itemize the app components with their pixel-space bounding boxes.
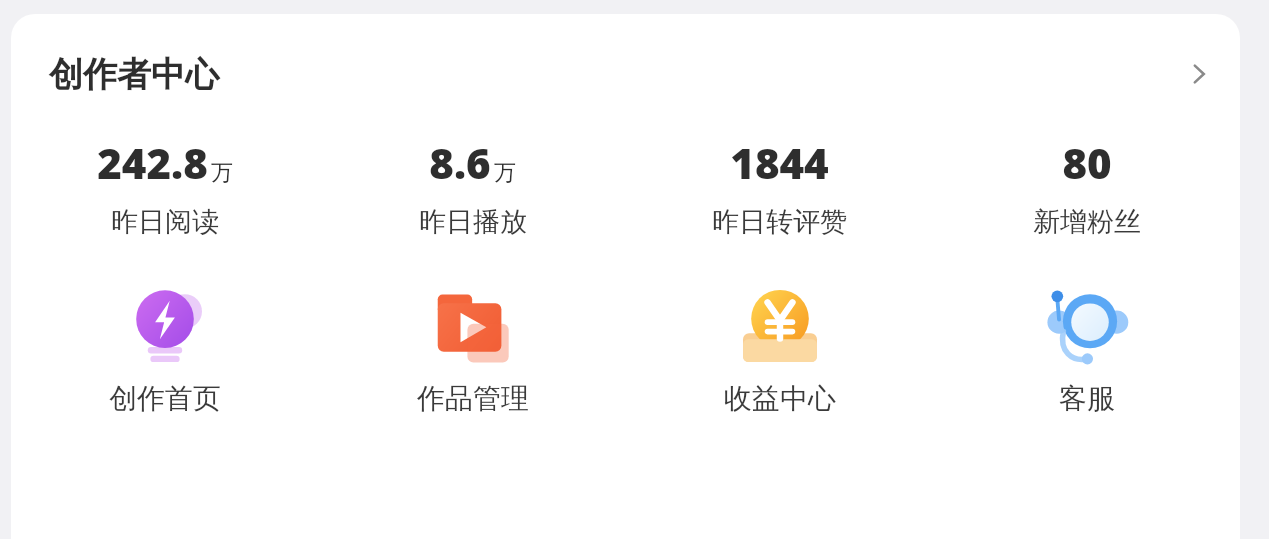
button[interactable]: 客服 (933, 283, 1240, 416)
staticText: 昨日阅读 (111, 205, 219, 239)
staticText: 收益中心 (724, 381, 836, 416)
button[interactable]: 收益中心 (626, 283, 933, 416)
button[interactable]: 作品管理 (319, 283, 626, 416)
button[interactable]: 8.6 (319, 134, 626, 239)
staticText: 作品管理 (417, 381, 529, 416)
staticText: 万 (494, 159, 516, 187)
staticText: 创作首页 (109, 381, 221, 416)
staticText: 昨日转评赞 (712, 205, 847, 239)
button[interactable]: 242.8 (11, 134, 319, 239)
staticText: 昨日播放 (419, 205, 527, 239)
staticText: 客服 (1059, 381, 1115, 416)
staticText: 242.8 (97, 134, 208, 191)
staticText: 万 (211, 159, 233, 187)
other: 更多 (1176, 51, 1222, 97)
staticText: 新增粉丝 (1033, 205, 1141, 239)
button[interactable]: 1844 (626, 134, 933, 239)
button[interactable]: 创作首页 (11, 283, 319, 416)
staticText: 创作者中心 (49, 53, 219, 96)
button[interactable]: 80 (933, 134, 1240, 239)
button[interactable]: 创作者中心 (11, 14, 1240, 134)
staticText: 1844 (730, 134, 829, 191)
staticText: 80 (1062, 134, 1112, 191)
staticText: 8.6 (429, 134, 491, 191)
